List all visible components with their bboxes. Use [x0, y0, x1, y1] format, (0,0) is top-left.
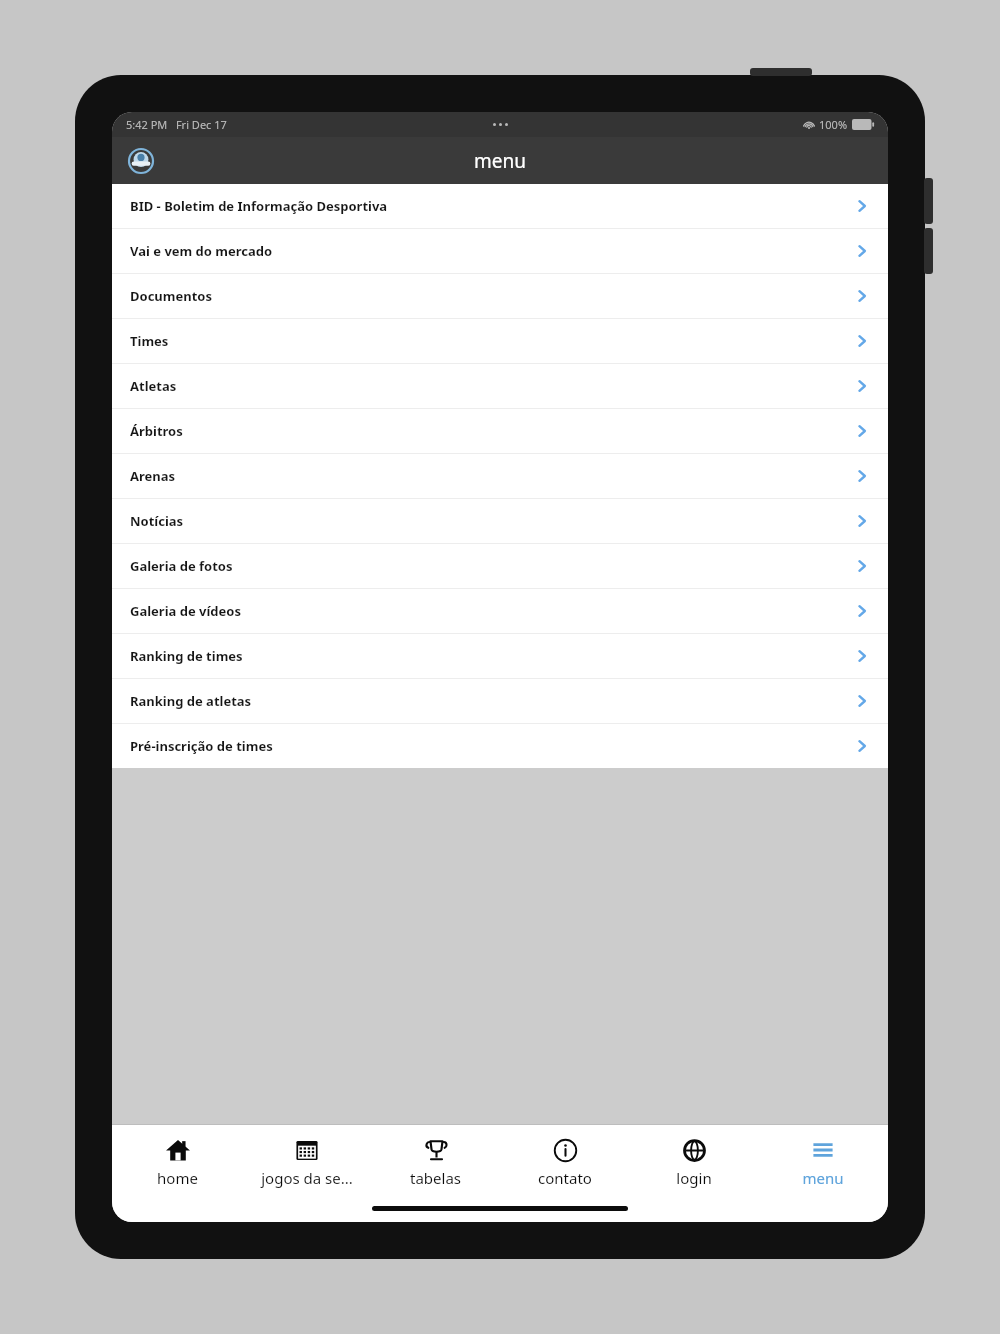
button[interactable]: Documentos: [112, 274, 888, 318]
staticText: Galeria de vídeos: [130, 602, 854, 620]
staticText: menu: [802, 1168, 844, 1188]
button[interactable]: Galeria de fotos: [112, 544, 888, 588]
button[interactable]: Árbitros: [112, 409, 888, 453]
staticText: Arenas: [130, 467, 854, 485]
staticText: tabelas: [410, 1168, 461, 1188]
button[interactable]: Arenas: [112, 454, 888, 498]
button[interactable]: Atletas: [112, 364, 888, 408]
button[interactable]: Galeria de vídeos: [112, 589, 888, 633]
button[interactable]: home: [114, 1133, 241, 1190]
staticText: jogos da se...: [261, 1168, 353, 1188]
button[interactable]: Ranking de atletas: [112, 679, 888, 723]
button[interactable]: BID - Boletim de Informação Desportiva: [112, 184, 888, 228]
button[interactable]: Pré-inscrição de times: [112, 724, 888, 768]
button[interactable]: menu: [759, 1133, 886, 1190]
button[interactable]: jogos da se...: [243, 1133, 370, 1190]
button[interactable]: Logo: [124, 144, 158, 178]
staticText: Times: [130, 332, 854, 350]
button[interactable]: login: [630, 1133, 757, 1190]
staticText: 5:42 PM Fri Dec 17: [126, 117, 227, 132]
staticText: Ranking de atletas: [130, 692, 854, 710]
staticText: Notícias: [130, 512, 854, 530]
button[interactable]: Times: [112, 319, 888, 363]
staticText: home: [157, 1168, 198, 1188]
staticText: login: [676, 1168, 712, 1188]
staticText: Galeria de fotos: [130, 557, 854, 575]
staticText: BID - Boletim de Informação Desportiva: [130, 197, 854, 215]
staticText: Pré-inscrição de times: [130, 737, 854, 755]
staticText: Atletas: [130, 377, 854, 395]
button[interactable]: Vai e vem do mercado: [112, 229, 888, 273]
staticText: Ranking de times: [130, 647, 854, 665]
button[interactable]: tabelas: [372, 1133, 499, 1190]
staticText: Vai e vem do mercado: [130, 242, 854, 260]
staticText: Documentos: [130, 287, 854, 305]
staticText: 100%: [819, 117, 848, 132]
button[interactable]: Notícias: [112, 499, 888, 543]
button[interactable]: Ranking de times: [112, 634, 888, 678]
staticText: Árbitros: [130, 422, 854, 440]
staticText: contato: [538, 1168, 592, 1188]
staticText: menu: [474, 148, 526, 174]
button[interactable]: contato: [501, 1133, 628, 1190]
